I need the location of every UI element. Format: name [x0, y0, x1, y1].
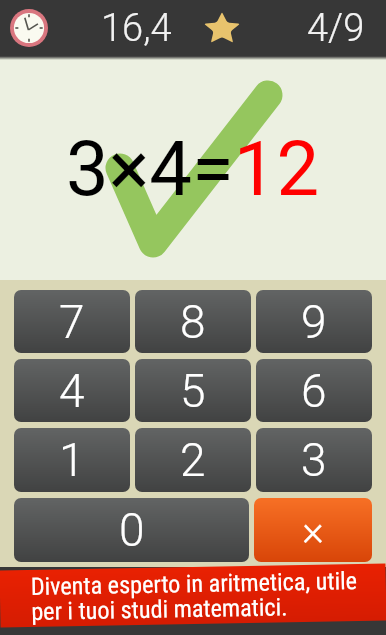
staticText: 9 — [301, 295, 327, 349]
staticText: 16,4 — [101, 6, 172, 51]
staticText: × — [302, 506, 324, 555]
staticText: 8 — [180, 295, 206, 349]
button[interactable]: 9 — [256, 290, 372, 353]
button[interactable]: 2 — [135, 428, 251, 492]
button[interactable]: 1 — [14, 428, 130, 492]
button[interactable]: 8 — [135, 290, 251, 353]
staticText: 3×4=12 — [66, 124, 320, 213]
button[interactable]: 5 — [135, 359, 251, 422]
staticText: 2 — [180, 433, 206, 487]
button[interactable]: Diventa esperto in aritmetica, utile per… — [0, 563, 386, 628]
button[interactable]: × — [254, 498, 372, 562]
staticText: 3 — [301, 433, 327, 487]
staticText: 7 — [59, 295, 85, 349]
button[interactable]: 7 — [14, 290, 130, 353]
button[interactable]: 3 — [256, 428, 372, 492]
button[interactable]: 6 — [256, 359, 372, 422]
staticText: Diventa esperto in aritmetica, utile per… — [31, 567, 358, 626]
staticText: 6 — [301, 364, 327, 418]
button[interactable]: 4 — [14, 359, 130, 422]
staticText: 1 — [59, 433, 85, 487]
button[interactable]: 0 — [14, 498, 249, 562]
staticText: 4 — [59, 364, 85, 418]
other: Score — [203, 11, 241, 45]
other: Timer — [10, 9, 48, 47]
staticText: 4/9 — [307, 6, 365, 51]
staticText: 0 — [119, 503, 145, 557]
staticText: 5 — [180, 364, 206, 418]
